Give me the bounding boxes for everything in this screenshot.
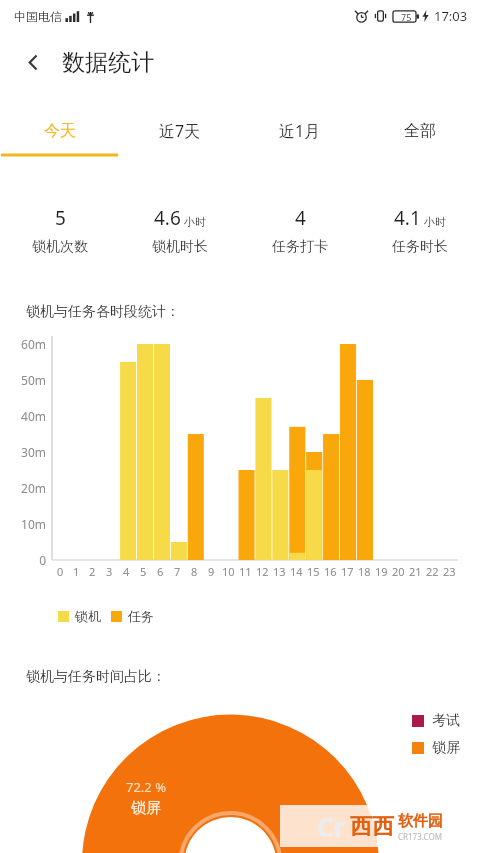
staticText: 2 — [89, 564, 96, 579]
staticText: 19 — [375, 564, 388, 579]
staticText: 锁机次数 — [32, 238, 88, 256]
button[interactable]: Back — [12, 41, 54, 83]
staticText: 西西 — [350, 813, 394, 841]
staticText: 10m — [0, 516, 46, 532]
staticText: 任务时长 — [392, 238, 448, 256]
staticText: 30m — [0, 444, 46, 460]
staticText: 近7天 — [159, 120, 201, 142]
staticText: 75 — [401, 11, 412, 23]
staticText: 1 — [73, 564, 80, 579]
staticText: 13 — [273, 564, 286, 579]
staticText: 50m — [0, 372, 46, 388]
staticText: 锁机与任务时间占比： — [26, 668, 166, 686]
staticText: 小时 — [184, 215, 206, 229]
staticText: 锁屏 — [432, 739, 460, 757]
staticText: 5 — [140, 564, 147, 579]
button[interactable]: 4.6 — [120, 205, 240, 256]
staticText: 17:03 — [434, 7, 468, 25]
staticText: 21 — [409, 564, 422, 579]
staticText: 考试 — [432, 712, 460, 730]
staticText: 23 — [443, 564, 456, 579]
staticText: 4.6 — [154, 205, 181, 231]
staticText: 锁机时长 — [152, 238, 208, 256]
staticText: 18 — [358, 564, 371, 579]
staticText: 20 — [392, 564, 405, 579]
button[interactable]: 近7天 — [120, 110, 240, 152]
staticText: 15 — [307, 564, 320, 579]
staticText: 全部 — [404, 121, 436, 141]
staticText: 6 — [157, 564, 164, 579]
button[interactable]: 今天 — [0, 110, 120, 152]
staticText: CR173.COM — [398, 831, 442, 842]
staticText: 5 — [55, 205, 66, 231]
staticText: Cr — [317, 809, 346, 844]
button[interactable]: 近1月 — [240, 110, 360, 152]
staticText: 4.1 — [394, 205, 421, 231]
staticText: 20m — [0, 480, 46, 496]
staticText: 72.2 % — [126, 778, 166, 796]
staticText: 14 — [290, 564, 303, 579]
staticText: 软件园 — [398, 812, 443, 831]
staticText: 任务打卡 — [272, 238, 328, 256]
staticText: 4 — [295, 205, 306, 231]
staticText: 11 — [239, 564, 252, 579]
button[interactable]: 5 — [0, 205, 120, 256]
staticText: 锁屏 — [131, 799, 161, 818]
staticText: 16 — [324, 564, 337, 579]
staticText: 17 — [341, 564, 354, 579]
button[interactable]: 全部 — [360, 110, 480, 152]
staticText: 锁机与任务各时段统计： — [26, 303, 180, 321]
button[interactable]: 4.1 — [360, 205, 480, 256]
staticText: 中国电信 — [14, 9, 62, 24]
staticText: 40m — [0, 408, 46, 424]
staticText: 8 — [191, 564, 198, 579]
staticText: 4 — [123, 564, 130, 579]
button[interactable]: 4 — [240, 205, 360, 256]
staticText: 锁机 — [75, 608, 101, 624]
staticText: 小时 — [424, 215, 446, 229]
staticText: 0 — [57, 564, 64, 579]
staticText: 60m — [0, 336, 46, 352]
staticText: 0 — [0, 552, 46, 568]
staticText: 3 — [106, 564, 113, 579]
staticText: 22 — [426, 564, 439, 579]
staticText: 9 — [208, 564, 215, 579]
staticText: 10 — [222, 564, 235, 579]
staticText: 7 — [174, 564, 181, 579]
staticText: 今天 — [44, 121, 76, 141]
staticText: 数据统计 — [62, 48, 154, 77]
staticText: 任务 — [128, 608, 154, 624]
staticText: 近1月 — [279, 120, 321, 142]
staticText: 12 — [256, 564, 269, 579]
